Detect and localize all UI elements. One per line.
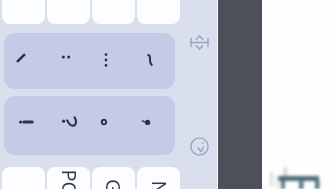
button[interactable] — [4, 96, 175, 155]
button[interactable]: N — [137, 167, 180, 189]
button[interactable]: G — [92, 167, 135, 189]
button[interactable] — [2, 0, 45, 24]
button[interactable] — [4, 33, 175, 89]
button[interactable] — [92, 0, 135, 24]
button[interactable]: Emoji — [186, 133, 213, 160]
button[interactable] — [47, 0, 90, 24]
button[interactable] — [2, 167, 45, 189]
button[interactable]: Resize keyboard — [186, 29, 213, 56]
staticText: G — [100, 179, 127, 189]
staticText: PO — [55, 169, 82, 189]
button[interactable]: PO — [47, 167, 90, 189]
button[interactable] — [137, 0, 180, 24]
staticText: N — [145, 180, 172, 189]
